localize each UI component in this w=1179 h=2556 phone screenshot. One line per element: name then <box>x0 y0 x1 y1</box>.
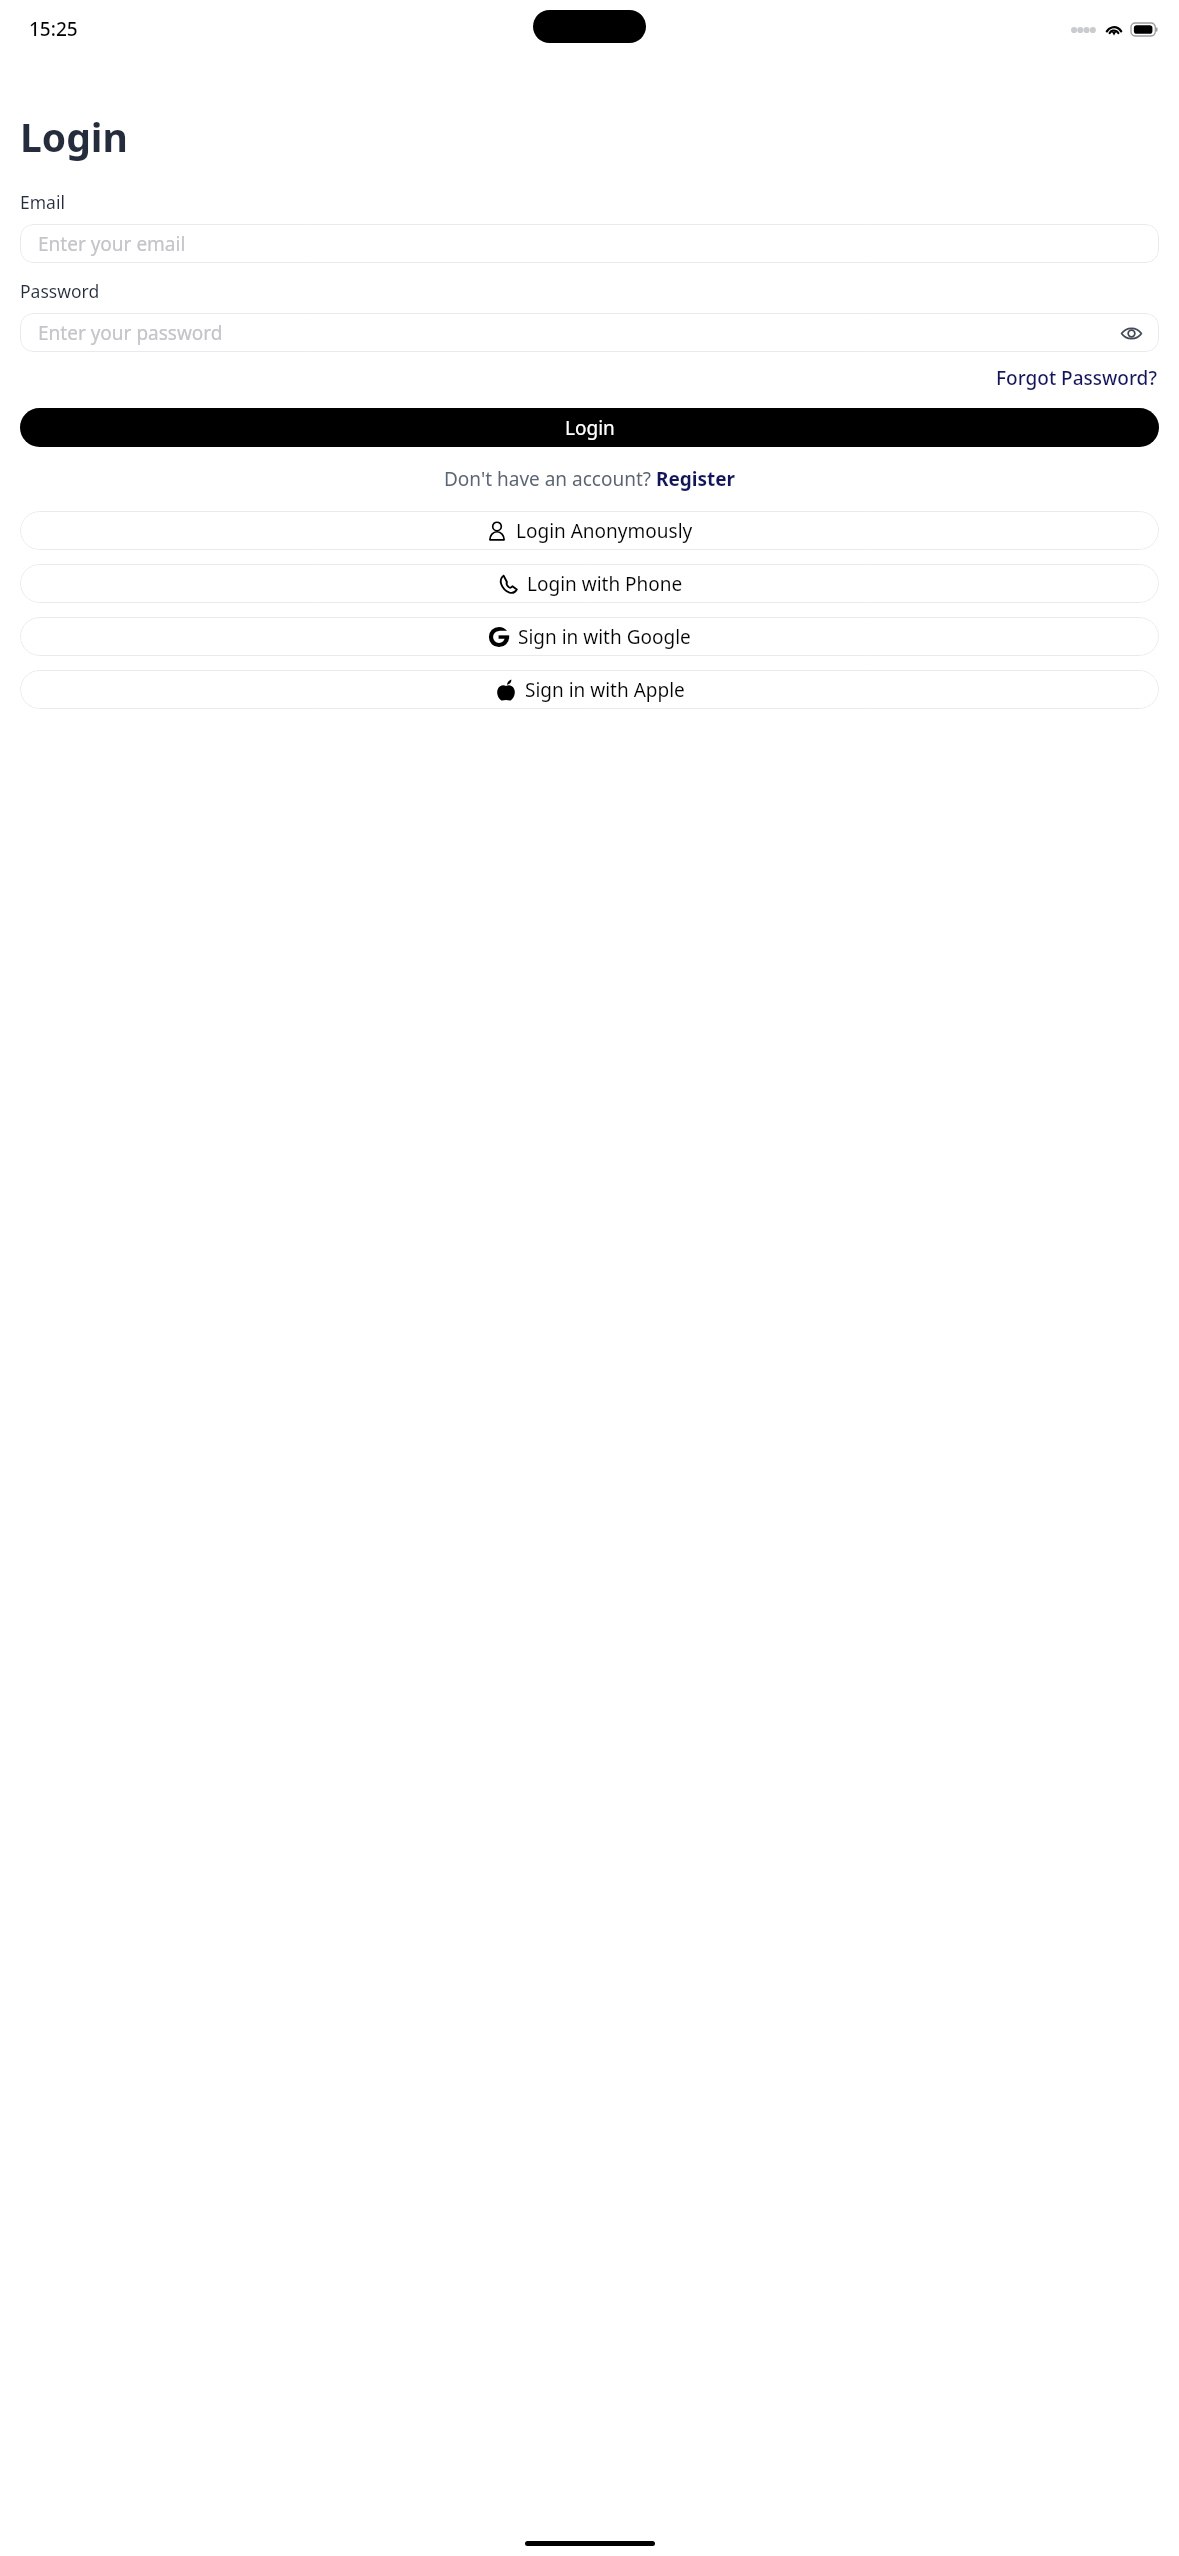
button[interactable]: Sign in with Google <box>20 617 1159 656</box>
button[interactable]: Enter your email <box>20 224 1159 263</box>
button[interactable]: Login with Phone <box>20 564 1159 603</box>
staticText: Sign in with Apple <box>525 677 685 703</box>
staticText: Don't have an account? <box>444 466 656 492</box>
button[interactable]: Sign in with Apple <box>20 670 1159 709</box>
staticText: Sign in with Google <box>518 624 691 650</box>
staticText: Enter your email <box>38 231 186 257</box>
button[interactable]: Forgot Password? <box>994 361 1159 395</box>
button[interactable]: Show password <box>1116 318 1146 348</box>
staticText: Login <box>20 110 128 163</box>
button[interactable]: Login Anonymously <box>20 511 1159 550</box>
staticText: Email <box>20 190 65 214</box>
staticText: Forgot Password? <box>996 365 1157 391</box>
staticText: Login Anonymously <box>516 518 693 544</box>
staticText: 15:25 <box>29 16 78 42</box>
staticText: Login <box>565 415 615 441</box>
button[interactable]: Enter your password <box>20 313 1159 352</box>
button[interactable]: Don't have an account? <box>20 463 1159 495</box>
staticText: Register <box>656 466 736 492</box>
button[interactable]: Login <box>20 408 1159 447</box>
staticText: Password <box>20 279 100 303</box>
staticText: Login with Phone <box>527 571 683 597</box>
staticText: Enter your password <box>38 320 223 346</box>
